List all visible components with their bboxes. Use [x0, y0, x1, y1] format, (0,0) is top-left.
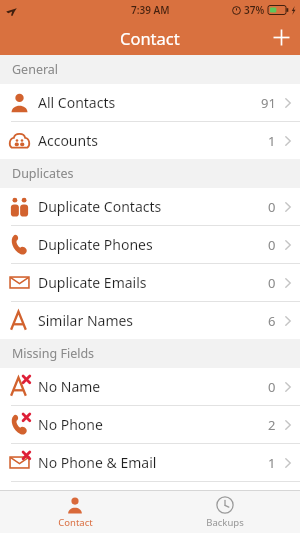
button[interactable]: All Contacts — [0, 84, 300, 121]
staticText: 0 — [268, 198, 276, 216]
staticText: Accounts — [38, 131, 268, 150]
staticText: Contact — [58, 516, 93, 529]
button[interactable]: No Phone — [0, 406, 300, 443]
button[interactable]: Contact — [0, 491, 150, 533]
staticText: Similar Names — [38, 311, 268, 330]
staticText: Duplicate Phones — [38, 235, 268, 254]
button[interactable]: No Phone & Email — [0, 444, 300, 481]
staticText: 37% — [244, 3, 265, 17]
staticText: No Name — [38, 377, 268, 396]
staticText: Missing Fields — [12, 345, 95, 362]
staticText: Duplicates — [12, 165, 74, 182]
button[interactable]: Duplicate Contacts — [0, 188, 300, 225]
button[interactable]: No Name — [0, 368, 300, 405]
button[interactable]: Add contact — [262, 20, 300, 55]
staticText: 6 — [268, 312, 276, 330]
staticText: 1 — [268, 132, 276, 150]
button[interactable]: Similar Names — [0, 302, 300, 339]
staticText: General — [12, 61, 59, 78]
staticText: Backups — [206, 516, 244, 529]
staticText: Duplicate Contacts — [38, 197, 268, 216]
staticText: 0 — [268, 236, 276, 254]
staticText: 1 — [268, 454, 276, 472]
button[interactable]: Backups — [150, 491, 300, 533]
staticText: No Phone & Email — [38, 453, 268, 472]
staticText: 91 — [261, 94, 276, 112]
staticText: 0 — [268, 274, 276, 292]
button[interactable]: Accounts — [0, 122, 300, 159]
button[interactable]: Duplicate Emails — [0, 264, 300, 301]
button[interactable]: Duplicate Phones — [0, 226, 300, 263]
staticText: 0 — [268, 378, 276, 396]
staticText: Duplicate Emails — [38, 273, 268, 292]
staticText: All Contacts — [38, 93, 261, 112]
staticText: Contact — [120, 27, 180, 49]
staticText: No Phone — [38, 415, 268, 434]
staticText: 7:39 AM — [131, 3, 170, 17]
staticText: 2 — [268, 416, 276, 434]
